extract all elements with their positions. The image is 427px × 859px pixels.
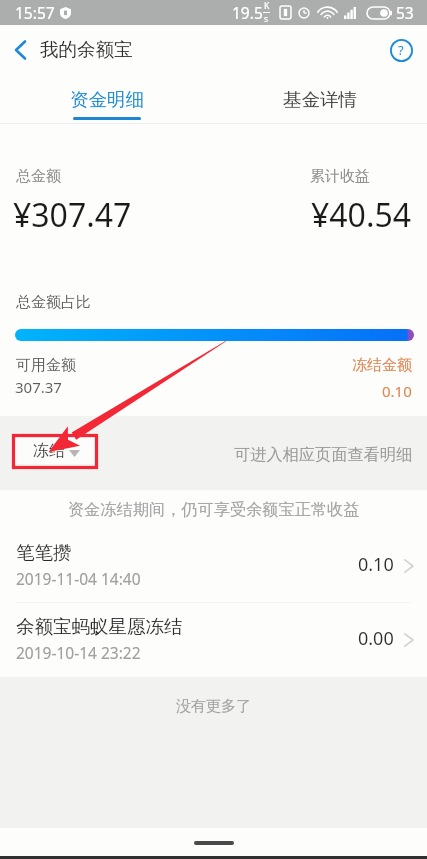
staticText: 总金额占比 (16, 293, 91, 312)
staticText: 没有更多了 (176, 697, 251, 716)
staticText: 笔笔攒 (16, 541, 72, 564)
staticText: 0.10 (382, 381, 412, 401)
staticText: 2019-10-14 23:22 (16, 642, 141, 663)
staticText: 累计收益 (310, 167, 370, 186)
staticText: 资金冻结期间，仍可享受余额宝正常收益 (68, 499, 360, 519)
staticText: 53 (396, 2, 414, 23)
staticText: 总金额 (16, 167, 61, 186)
staticText: 冻结 (33, 441, 65, 461)
staticText: 19.5 (232, 2, 263, 23)
staticText: 余额宝蚂蚁星愿冻结 (16, 615, 183, 638)
staticText: 可用金额 (16, 356, 76, 375)
staticText: 0.10 (358, 552, 394, 577)
button[interactable]: 笔笔攒 (0, 528, 427, 601)
button[interactable]: Help (384, 33, 418, 67)
staticText: 2019-11-04 14:40 (16, 568, 141, 589)
staticText: ¥307.47 (13, 193, 132, 237)
staticText: s (264, 13, 269, 25)
staticText: 0.00 (358, 626, 394, 651)
button[interactable]: 余额宝蚂蚁星愿冻结 (0, 602, 427, 675)
button[interactable]: 资金明细 (0, 73, 213, 124)
staticText: K (264, 0, 270, 12)
staticText: 资金明细 (70, 88, 144, 111)
staticText: 15:57 (15, 2, 55, 23)
staticText: 基金详情 (283, 88, 357, 111)
staticText: 可进入相应页面查看明细 (234, 444, 413, 464)
staticText: ¥40.54 (311, 193, 412, 237)
button[interactable]: 基金详情 (213, 73, 427, 124)
staticText: 冻结金额 (352, 356, 412, 375)
staticText: 我的余额宝 (40, 38, 133, 61)
staticText: 307.37 (15, 377, 62, 397)
staticText: ? (398, 41, 404, 59)
button[interactable]: Back (4, 34, 36, 66)
button[interactable]: 冻结 (15, 438, 96, 464)
